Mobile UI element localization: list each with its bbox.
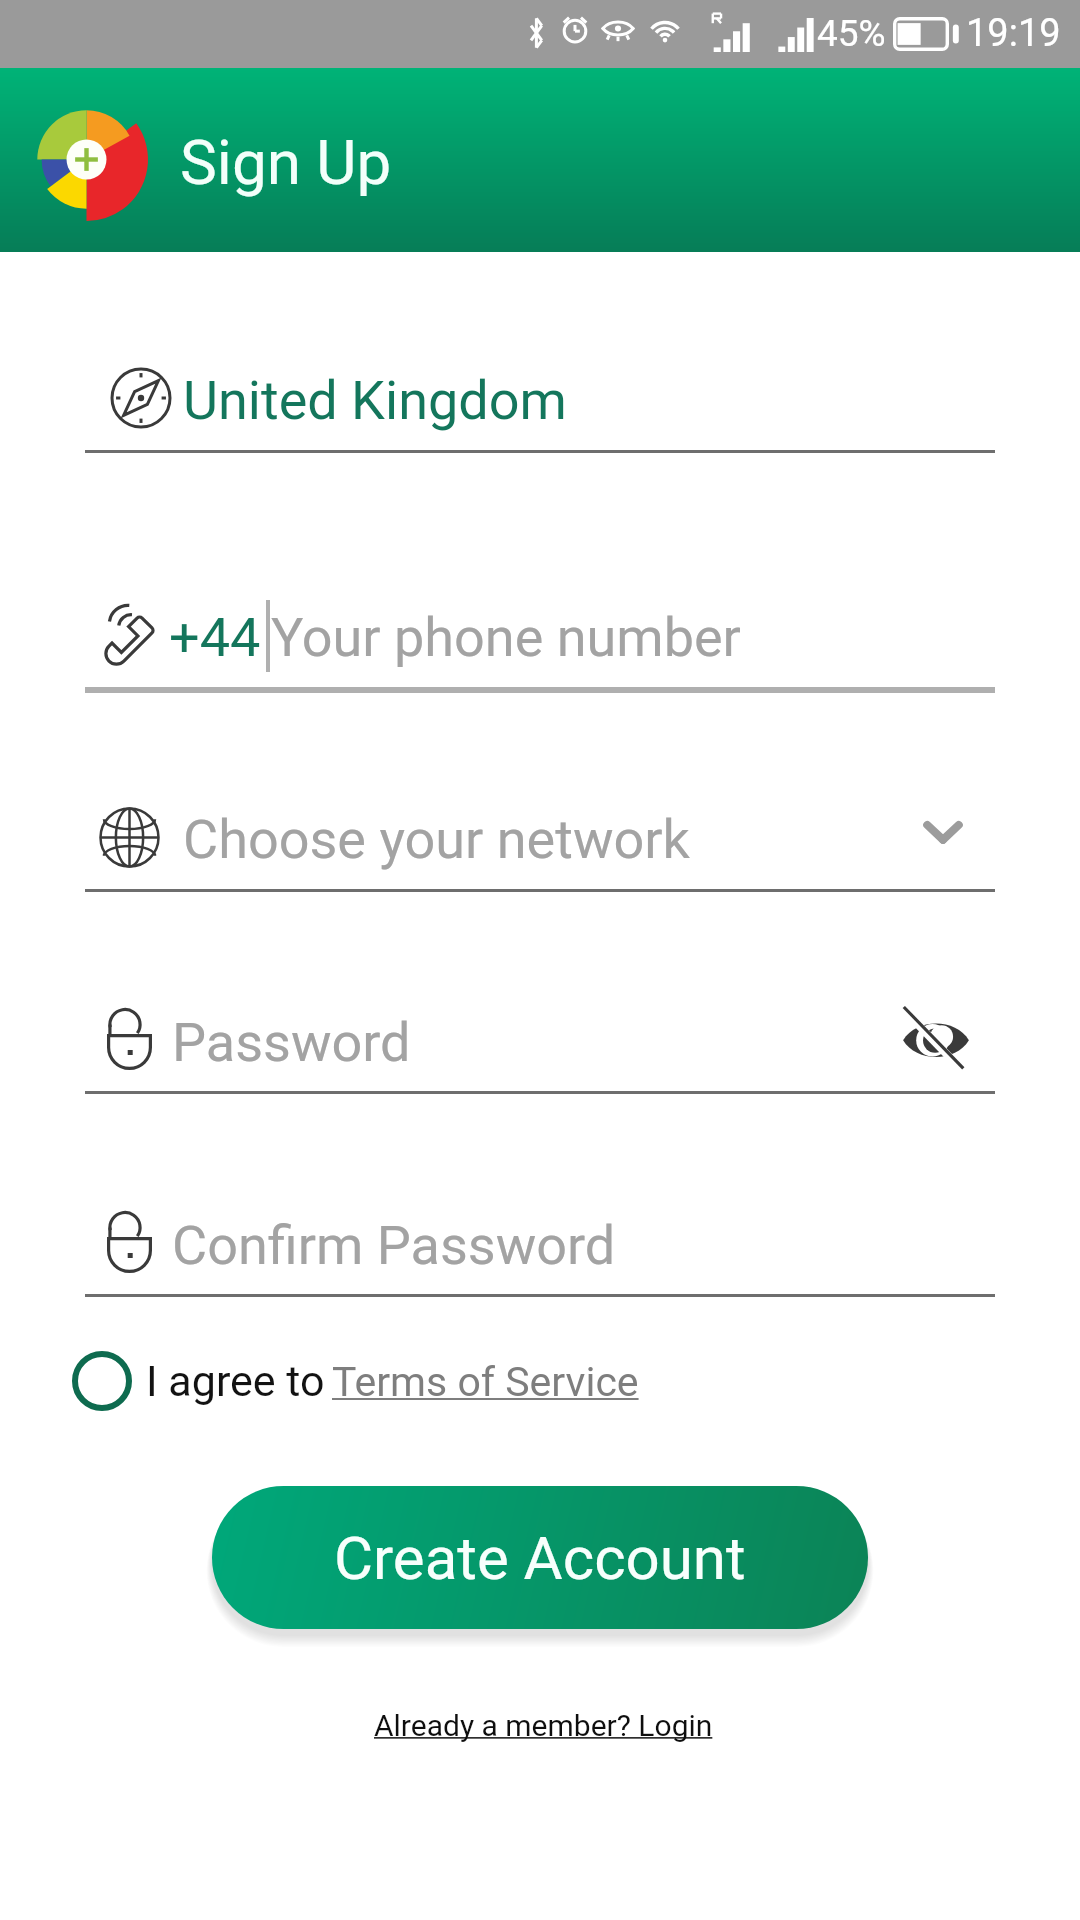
button[interactable]: Create Account (212, 1486, 868, 1629)
staticText: Confirm Password (172, 1214, 616, 1277)
button[interactable] (360, 1695, 720, 1753)
other: Expand network list (912, 807, 974, 862)
staticText: Your phone number (271, 606, 741, 669)
button[interactable]: Phone number (85, 560, 995, 693)
staticText: Choose your network (183, 808, 690, 871)
staticText: Password (172, 1011, 411, 1074)
button[interactable]: Password (85, 1000, 995, 1096)
staticText: I agree to (146, 1356, 336, 1406)
staticText: Sign Up (180, 126, 392, 199)
button[interactable]: Choose your network (85, 800, 995, 894)
staticText: 19:19 (966, 11, 1061, 56)
staticText: United Kingdom (183, 369, 567, 432)
button[interactable]: Show password (901, 1007, 971, 1071)
button[interactable]: Confirm password (85, 1205, 995, 1299)
staticText: Already a member? Login (374, 1708, 713, 1743)
staticText: Terms of Service (332, 1358, 639, 1406)
button[interactable]: Select country (85, 246, 995, 455)
button[interactable] (66, 1345, 656, 1417)
staticText: Create Account (334, 1523, 746, 1593)
staticText: 45% (817, 12, 886, 55)
staticText: +44 (169, 606, 261, 669)
